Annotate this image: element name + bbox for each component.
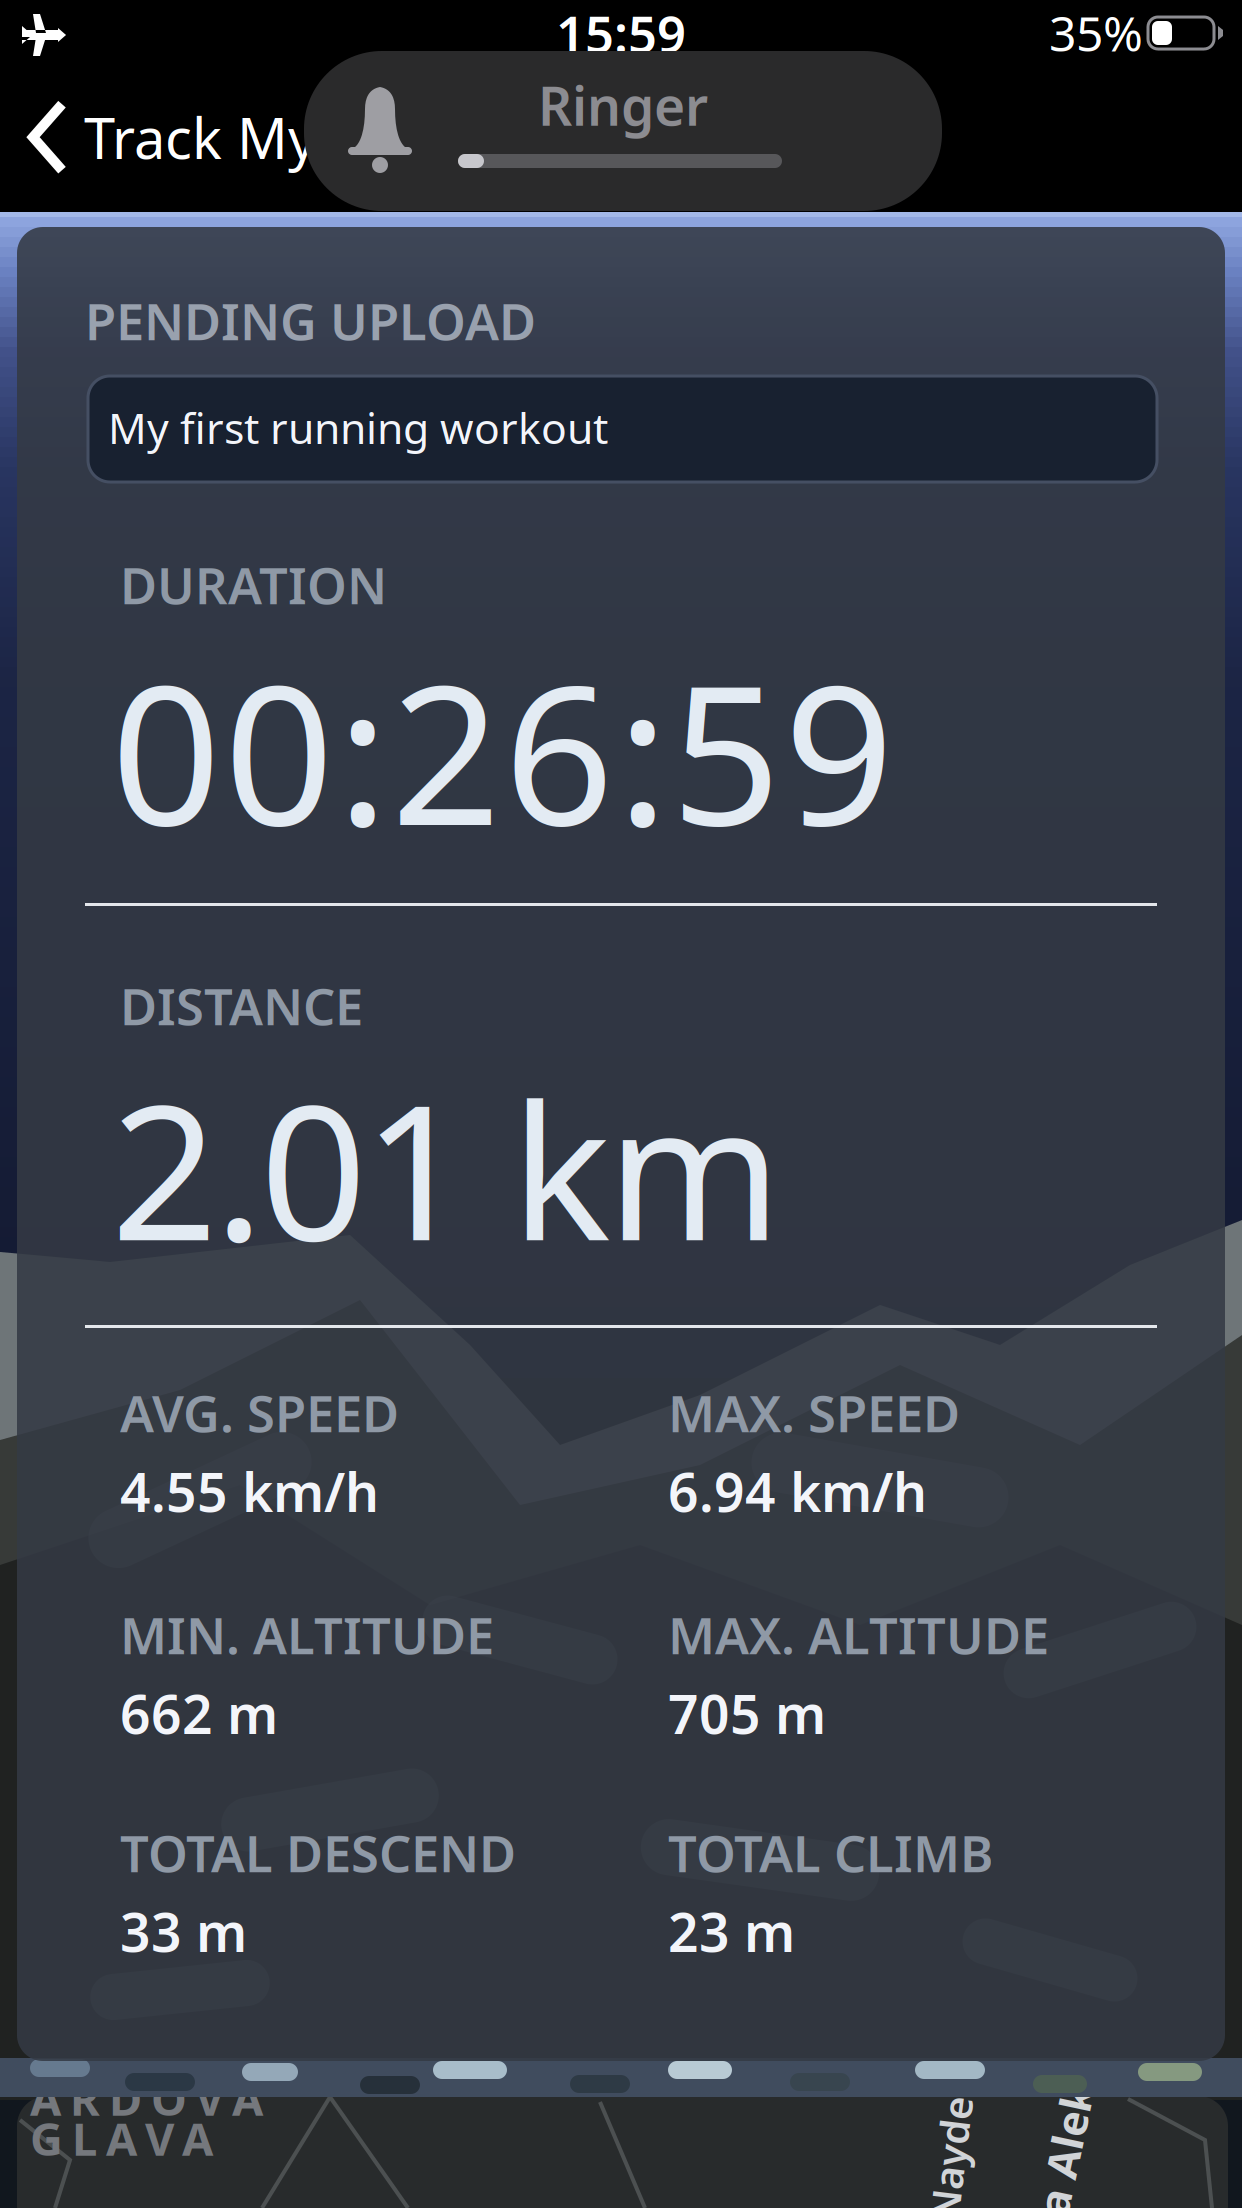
staticText: 15:59 bbox=[556, 0, 686, 67]
staticText: PENDING UPLOAD bbox=[85, 287, 536, 354]
staticText: My first running workout bbox=[108, 399, 608, 456]
staticText: 6.94 km/h bbox=[668, 1456, 927, 1527]
staticText: 35% bbox=[1049, 1, 1143, 65]
staticText: 33 m bbox=[120, 1896, 247, 1967]
staticText: ARDOVA bbox=[30, 2068, 263, 2128]
button[interactable]: Track My bbox=[28, 100, 317, 174]
staticText: 662 m bbox=[120, 1678, 278, 1749]
staticText: 2.01 km bbox=[111, 1044, 782, 1292]
staticText: 705 m bbox=[668, 1678, 826, 1749]
staticText: MAX. ALTITUDE bbox=[668, 1601, 1049, 1668]
staticText: 00:26:59 bbox=[111, 623, 894, 878]
staticText: TOTAL DESCEND bbox=[120, 1819, 516, 1886]
staticText: Track My bbox=[84, 100, 317, 174]
button[interactable]: My first running workout bbox=[88, 376, 1157, 482]
staticText: Ringer bbox=[538, 70, 708, 140]
staticText: 4.55 km/h bbox=[120, 1456, 379, 1527]
staticText: a Nayden bbox=[858, 2135, 1042, 2188]
staticText: AVG. SPEED bbox=[120, 1379, 399, 1446]
staticText: MAX. SPEED bbox=[668, 1379, 960, 1446]
staticText: DISTANCE bbox=[120, 972, 363, 1039]
staticText: GLAVA bbox=[30, 2108, 213, 2168]
staticText: MIN. ALTITUDE bbox=[120, 1601, 494, 1668]
staticText: TOTAL CLIMB bbox=[668, 1819, 993, 1886]
staticText: DURATION bbox=[120, 551, 387, 618]
staticText: 23 m bbox=[668, 1896, 795, 1967]
staticText: sa Alek bbox=[987, 2132, 1139, 2188]
